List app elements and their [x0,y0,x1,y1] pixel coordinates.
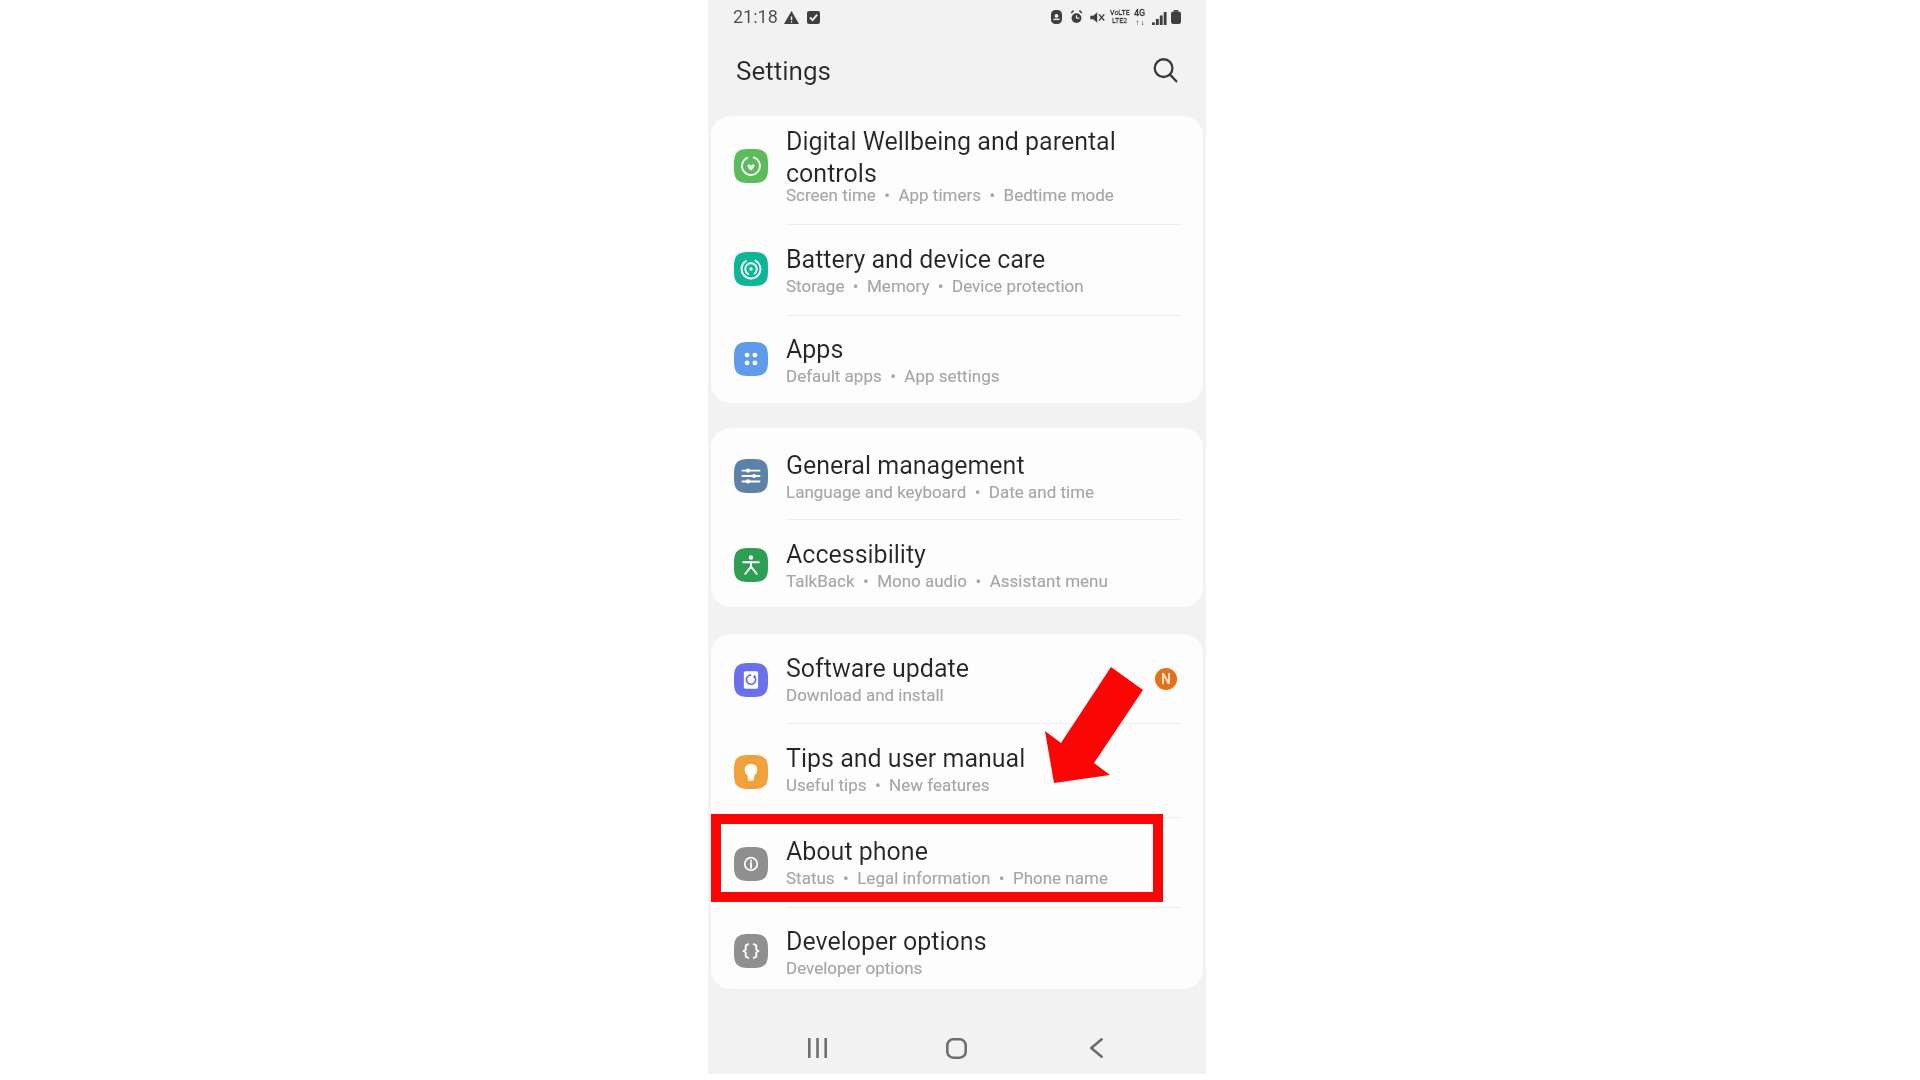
staticText: Default apps • App settings [786,366,1000,386]
staticText: Developer options [786,958,923,978]
staticText: General management [786,451,1025,480]
button[interactable]: About phone [711,817,1203,907]
staticText: About phone [786,837,928,866]
button[interactable]: Search [1144,49,1188,93]
staticText: Software update [786,654,970,683]
staticText: TalkBack • Mono audio • Assistant menu [786,571,1108,591]
staticText: Useful tips • New features [786,775,990,795]
staticText: Language and keyboard • Date and time [786,482,1095,502]
button[interactable]: Software update [711,634,1203,724]
button[interactable]: Home [932,1024,980,1072]
button[interactable]: Digital Wellbeing and parental controls [711,116,1203,224]
staticText: ↑↓ [1135,19,1146,26]
button[interactable]: Battery and device care [711,224,1203,314]
button[interactable]: Tips and user manual [711,724,1203,817]
button[interactable]: Back [1072,1024,1120,1072]
staticText: Download and install [786,685,944,705]
staticText: Tips and user manual [786,744,1026,773]
staticText: 4G [1134,8,1146,19]
staticText: Settings [736,56,831,86]
button[interactable]: Apps [711,315,1203,403]
button[interactable]: Accessibility [711,519,1203,607]
staticText: Apps [786,335,844,364]
staticText: Storage • Memory • Device protection [786,276,1084,296]
button[interactable]: Recent apps [793,1024,841,1072]
staticText: Screen time • App timers • Bedtime mode [786,185,1114,205]
staticText: 21:18 [733,6,778,27]
button[interactable]: Developer options [711,907,1203,989]
staticText: Digital Wellbeing and parental controls [786,127,1116,188]
staticText: Battery and device care [786,245,1046,274]
staticText: VoLTE [1110,9,1130,17]
staticText: N [1161,671,1171,687]
staticText: LTE2 [1112,17,1128,25]
button[interactable]: General management [711,428,1203,519]
staticText: Developer options [786,927,987,956]
staticText: Accessibility [786,540,926,569]
staticText: Status • Legal information • Phone name [786,868,1108,888]
